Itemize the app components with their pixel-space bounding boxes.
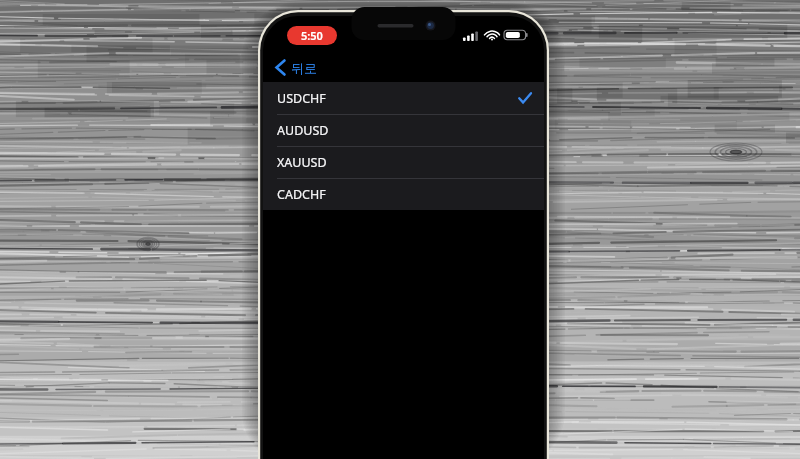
button[interactable]: AUDUSD: [263, 114, 544, 146]
button[interactable]: USDCHF: [263, 82, 544, 114]
staticText: XAUUSD: [277, 154, 327, 171]
staticText: AUDUSD: [277, 122, 329, 139]
button[interactable]: CADCHF: [263, 178, 544, 210]
staticText: 5:50: [301, 28, 323, 43]
staticText: CADCHF: [277, 186, 326, 203]
button[interactable]: 뒤로: [271, 56, 327, 79]
staticText: 뒤로: [291, 60, 317, 76]
staticText: USDCHF: [277, 90, 326, 107]
button[interactable]: XAUUSD: [263, 146, 544, 178]
